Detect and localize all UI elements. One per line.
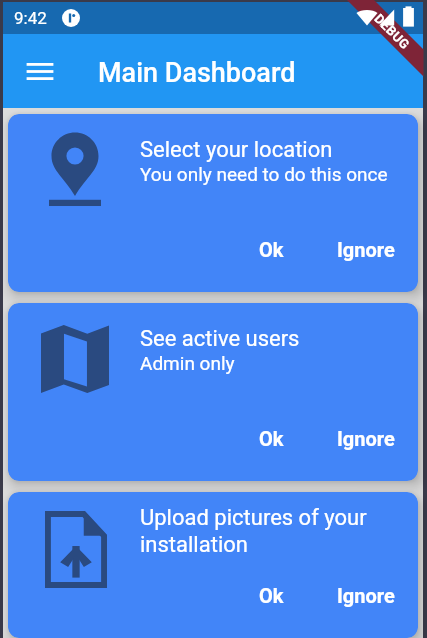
button[interactable]: Ok — [249, 234, 294, 265]
staticText: Select your location — [140, 137, 333, 163]
staticText: Admin only — [140, 352, 235, 374]
button[interactable]: Ignore — [327, 234, 405, 265]
button[interactable]: Ignore — [327, 580, 405, 611]
staticText: Upload pictures of your installation — [140, 505, 398, 557]
button[interactable]: Ok — [249, 423, 294, 454]
staticText: You only need to do this once — [140, 163, 388, 185]
staticText: See active users — [140, 326, 300, 352]
button[interactable]: See active users — [8, 303, 418, 481]
button[interactable]: Select your location — [8, 114, 418, 292]
staticText: Ignore — [337, 584, 395, 607]
staticText: Ignore — [337, 427, 395, 450]
staticText: Ok — [259, 238, 284, 261]
staticText: Main Dashboard — [98, 57, 296, 89]
button[interactable]: Ignore — [327, 423, 405, 454]
button[interactable]: Ok — [249, 580, 294, 611]
staticText: 9:42 — [14, 8, 47, 28]
button[interactable]: Upload pictures of your installation — [8, 492, 418, 638]
staticText: Ok — [259, 584, 284, 607]
staticText: Ignore — [337, 238, 395, 261]
staticText: Ok — [259, 427, 284, 450]
button[interactable]: Open navigation menu — [18, 55, 58, 92]
